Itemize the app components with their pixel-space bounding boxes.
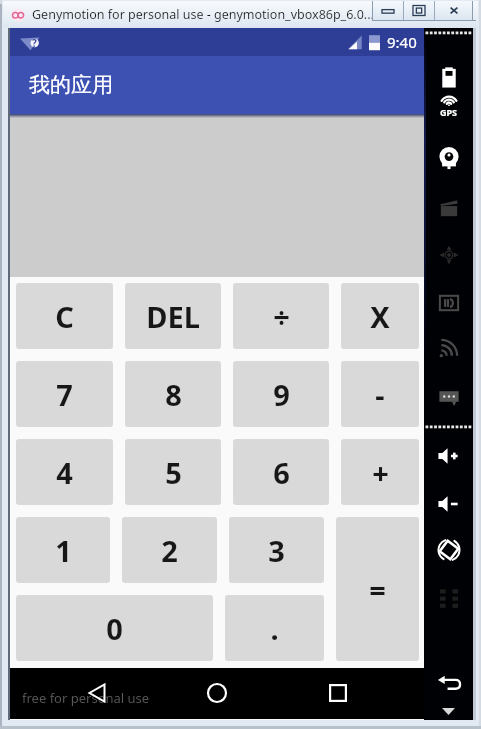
staticText: 4 bbox=[56, 453, 73, 492]
button[interactable]: X bbox=[341, 283, 419, 349]
staticText: DEL bbox=[146, 297, 200, 336]
staticText: = bbox=[369, 570, 386, 609]
button[interactable]: Battery bbox=[424, 63, 473, 91]
button[interactable]: Volume down bbox=[424, 490, 473, 518]
staticText: - bbox=[375, 375, 385, 414]
staticText: . bbox=[270, 609, 279, 648]
staticText: C bbox=[55, 297, 74, 336]
button[interactable]: . bbox=[225, 595, 324, 661]
staticText: free for personal use bbox=[22, 689, 150, 707]
button[interactable]: Home bbox=[194, 670, 239, 715]
staticText: GPS bbox=[440, 106, 458, 118]
button[interactable]: More bbox=[424, 704, 473, 718]
button[interactable]: Minimize bbox=[373, 1, 403, 20]
button[interactable]: Volume up bbox=[424, 442, 473, 470]
button[interactable]: 7 bbox=[16, 361, 113, 427]
staticText: 5 bbox=[165, 453, 182, 492]
button[interactable]: GPS bbox=[424, 94, 473, 120]
button[interactable]: Close bbox=[435, 1, 472, 20]
staticText: 0 bbox=[106, 609, 123, 648]
staticText: 6 bbox=[273, 453, 290, 492]
staticText: ? bbox=[32, 36, 37, 50]
staticText: X bbox=[370, 297, 390, 336]
button[interactable]: Keypad bbox=[424, 584, 473, 612]
button[interactable]: Maximize bbox=[404, 1, 434, 20]
button[interactable]: 6 bbox=[233, 439, 329, 505]
staticText: ÷ bbox=[273, 297, 290, 336]
button[interactable]: DEL bbox=[125, 283, 221, 349]
button[interactable]: 8 bbox=[125, 361, 221, 427]
staticText: 9 bbox=[273, 375, 290, 414]
staticText: 1 bbox=[55, 531, 72, 570]
staticText: 8 bbox=[165, 375, 182, 414]
button[interactable]: C bbox=[16, 283, 113, 349]
button[interactable]: Recents bbox=[315, 670, 360, 715]
button[interactable]: Dpad bbox=[424, 241, 473, 269]
button[interactable]: Network bbox=[424, 334, 473, 362]
button[interactable]: Identifiers bbox=[424, 289, 473, 317]
button[interactable]: Video bbox=[424, 194, 473, 222]
button[interactable]: Camera bbox=[424, 145, 473, 173]
staticText: Genymotion for personal use - genymotion… bbox=[32, 6, 374, 23]
button[interactable]: 1 bbox=[16, 517, 110, 583]
button[interactable]: 2 bbox=[122, 517, 217, 583]
button[interactable]: - bbox=[341, 361, 419, 427]
button[interactable]: 3 bbox=[229, 517, 324, 583]
staticText: 9:40 bbox=[387, 32, 417, 52]
staticText: 我的应用 bbox=[29, 72, 113, 98]
button[interactable]: Rotate bbox=[424, 536, 473, 564]
button[interactable]: 4 bbox=[16, 439, 113, 505]
button[interactable]: ÷ bbox=[233, 283, 329, 349]
button[interactable]: 9 bbox=[233, 361, 329, 427]
button[interactable]: Back bbox=[74, 670, 119, 715]
button[interactable]: 5 bbox=[125, 439, 221, 505]
button[interactable]: + bbox=[341, 439, 419, 505]
staticText: 2 bbox=[161, 531, 178, 570]
button[interactable]: Back bbox=[424, 670, 473, 698]
button[interactable]: SMS bbox=[424, 383, 473, 411]
staticText: + bbox=[372, 453, 389, 492]
button[interactable]: 0 bbox=[16, 595, 213, 661]
staticText: 7 bbox=[56, 375, 73, 414]
staticText: 3 bbox=[268, 531, 285, 570]
button[interactable]: = bbox=[336, 517, 419, 661]
